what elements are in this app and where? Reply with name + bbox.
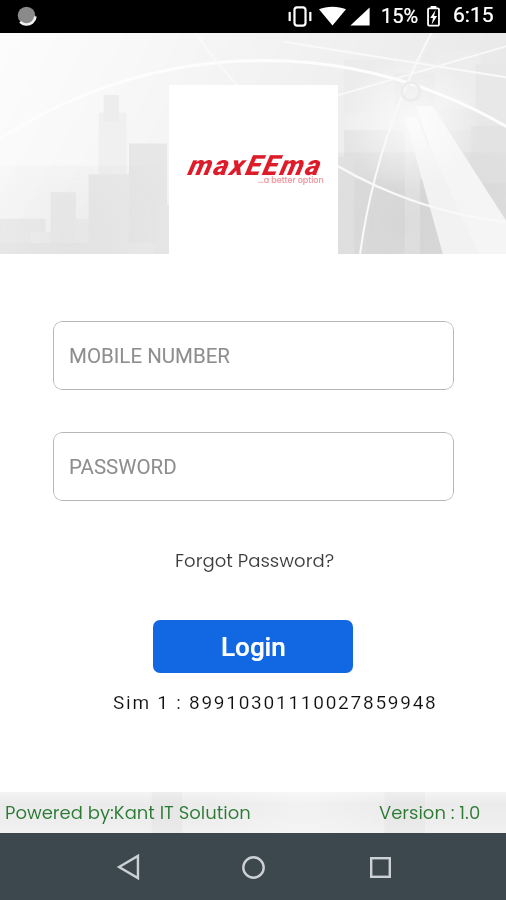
button[interactable]: Login (153, 620, 353, 673)
staticText: maxEEma (187, 149, 321, 182)
button[interactable]: Forgot Password? (165, 544, 345, 577)
button[interactable]: MOBILE NUMBER (53, 321, 454, 390)
staticText: Powered by:Kant IT Solution (5, 800, 251, 825)
staticText: PASSWORD (69, 455, 177, 479)
staticText: Version : 1.0 (379, 800, 481, 825)
button[interactable]: Back (98, 837, 158, 897)
staticText: MOBILE NUMBER (69, 344, 230, 368)
staticText: 15% (381, 4, 419, 27)
staticText: 6:15 (453, 3, 494, 28)
staticText: Sim 1 : 89910301110027859948 (113, 691, 438, 713)
staticText: Forgot Password? (175, 548, 335, 573)
staticText: Login (221, 632, 286, 662)
staticText: ...a better option (258, 175, 324, 186)
button[interactable]: Home (223, 837, 283, 897)
button[interactable]: PASSWORD (53, 432, 454, 501)
button[interactable]: Recents (350, 837, 410, 897)
